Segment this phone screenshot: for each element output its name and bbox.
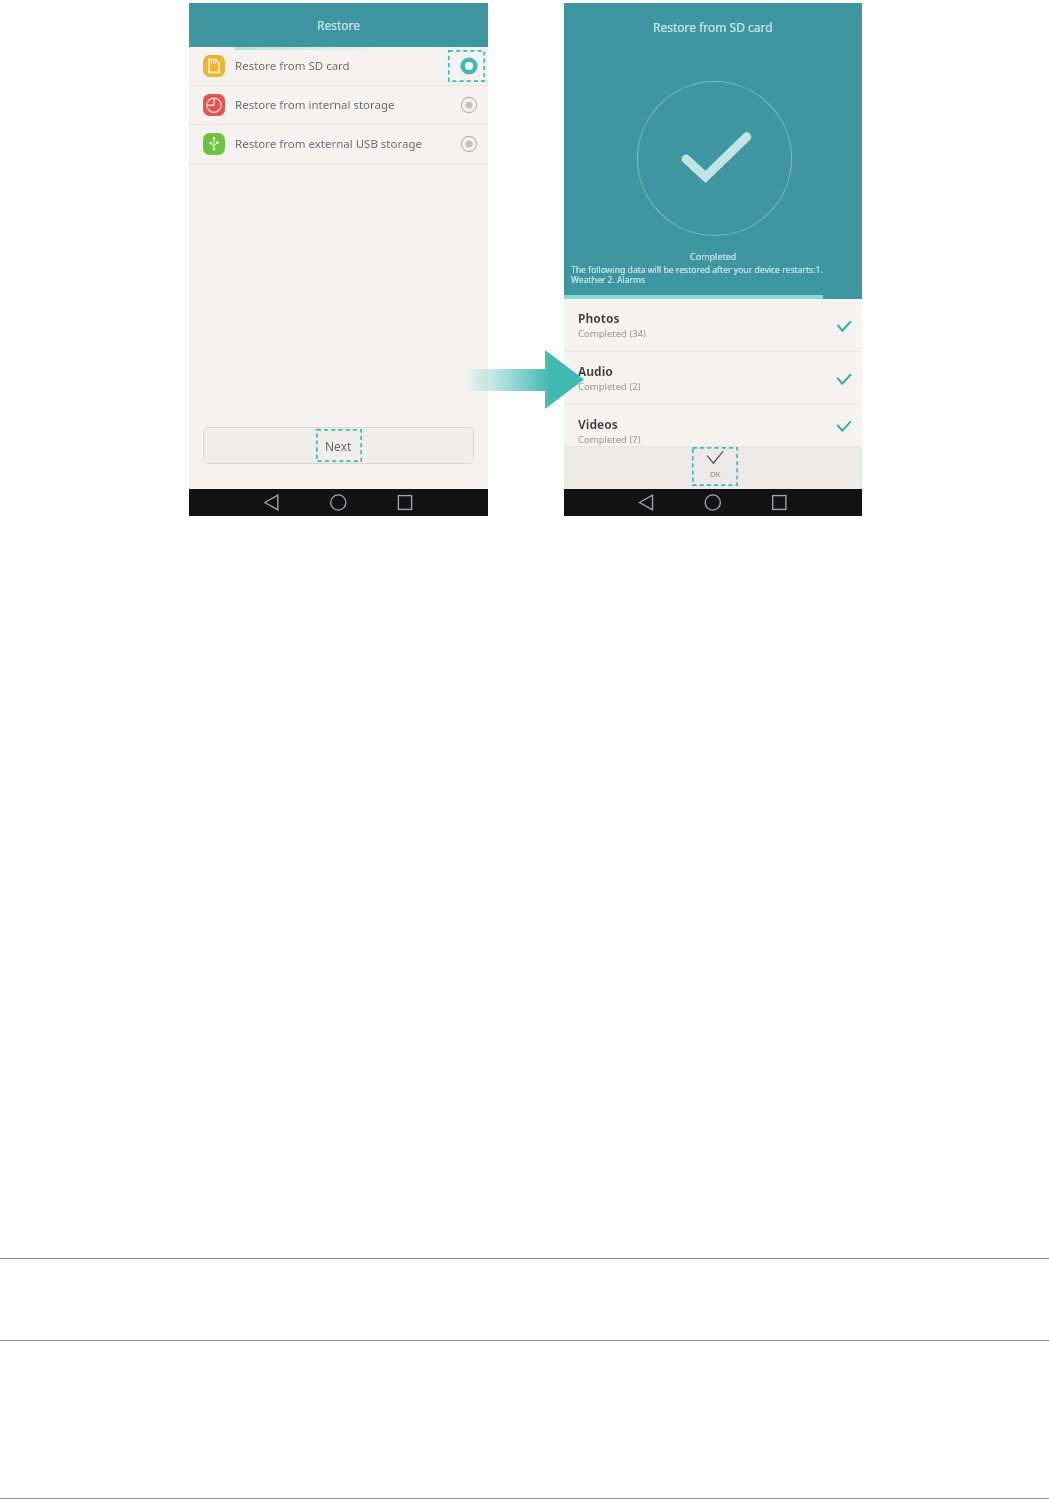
- staticText: Restore: [317, 17, 361, 33]
- button[interactable]: Restore from internal storage: [189, 86, 488, 124]
- button[interactable]: Audio: [564, 352, 862, 404]
- button[interactable]: Videos: [564, 405, 862, 446]
- staticText: Restore from SD card: [235, 58, 350, 74]
- staticText: Completed: [690, 250, 737, 262]
- staticText: Restore from external USB storage: [235, 136, 422, 152]
- staticText: Restore from SD card: [653, 19, 773, 35]
- button[interactable]: Next: [203, 427, 474, 464]
- button[interactable]: Photos: [564, 299, 862, 351]
- staticText: Audio: [578, 363, 613, 379]
- staticText: Completed (34): [578, 327, 646, 340]
- staticText: OK: [710, 469, 721, 479]
- button[interactable]: OK: [707, 451, 723, 479]
- staticText: Completed (7): [578, 433, 641, 446]
- staticText: Videos: [578, 416, 618, 432]
- staticText: Restore from internal storage: [235, 97, 395, 113]
- button[interactable]: Restore from SD card: [189, 47, 488, 85]
- staticText: Photos: [578, 310, 620, 326]
- button[interactable]: Restore from external USB storage: [189, 125, 488, 163]
- staticText: The following data will be restored afte…: [571, 264, 855, 286]
- staticText: Completed (2): [578, 380, 641, 393]
- staticText: Next: [325, 438, 352, 454]
